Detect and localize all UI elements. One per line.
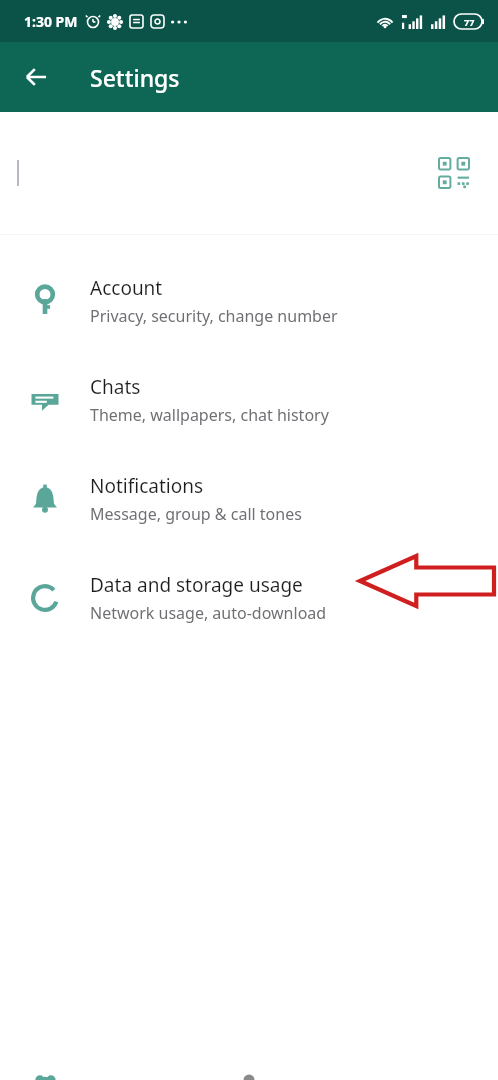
button[interactable]: Data and storage usage bbox=[0, 548, 498, 647]
staticText: Chats bbox=[90, 374, 141, 400]
staticText: 77 bbox=[464, 16, 475, 28]
button[interactable]: Notifications bbox=[0, 449, 498, 548]
staticText: Settings bbox=[90, 62, 180, 93]
staticText: Notifications bbox=[90, 473, 204, 499]
button[interactable]: Account bbox=[0, 251, 498, 350]
staticText: 1:30 PM bbox=[24, 12, 78, 31]
staticText: Data and storage usage bbox=[90, 572, 303, 598]
staticText: Privacy, security, change number bbox=[90, 305, 338, 327]
staticText: Network usage, auto-download bbox=[90, 602, 327, 624]
staticText: Account bbox=[90, 275, 163, 301]
staticText: Theme, wallpapers, chat history bbox=[90, 404, 329, 426]
staticText: Message, group & call tones bbox=[90, 503, 302, 525]
button[interactable]: Back bbox=[12, 53, 60, 101]
button[interactable]: Chats bbox=[0, 350, 498, 449]
button[interactable]: QR code bbox=[432, 151, 476, 195]
